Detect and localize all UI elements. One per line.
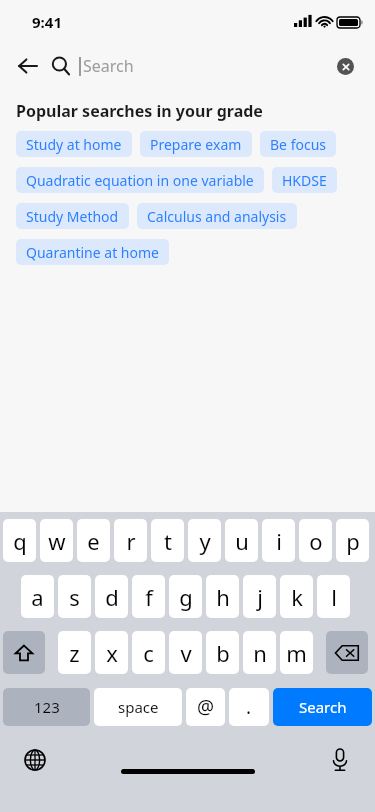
button[interactable]: t: [151, 519, 184, 562]
button[interactable]: d: [95, 575, 128, 618]
button[interactable]: g: [169, 575, 202, 618]
staticText: h: [216, 582, 230, 612]
staticText: a: [31, 582, 44, 612]
staticText: o: [309, 526, 323, 556]
staticText: Search: [299, 697, 347, 717]
button[interactable]: a: [21, 575, 54, 618]
staticText: 9:41: [32, 12, 62, 32]
staticText: Be focus: [270, 135, 326, 154]
staticText: Study Method: [26, 207, 119, 226]
button[interactable]: h: [206, 575, 239, 618]
staticText: s: [69, 582, 80, 612]
staticText: b: [216, 638, 230, 668]
button[interactable]: Change keyboard language: [20, 745, 50, 775]
staticText: v: [180, 638, 192, 668]
button[interactable]: k: [280, 575, 313, 618]
staticText: w: [48, 526, 66, 556]
button[interactable]: x: [95, 631, 128, 674]
staticText: q: [13, 526, 27, 556]
staticText: Popular searches in your grade: [16, 100, 263, 122]
staticText: m: [286, 638, 307, 668]
button[interactable]: p: [336, 519, 369, 562]
button[interactable]: q: [3, 519, 36, 562]
button[interactable]: Quadratic equation in one variable: [16, 167, 264, 193]
staticText: r: [126, 526, 136, 556]
button[interactable]: v: [169, 631, 202, 674]
staticText: x: [106, 638, 118, 668]
staticText: @: [197, 694, 215, 720]
staticText: p: [346, 526, 360, 556]
staticText: u: [235, 526, 249, 556]
button[interactable]: Back: [13, 51, 43, 81]
staticText: Search: [83, 55, 134, 77]
button[interactable]: @: [186, 688, 225, 726]
staticText: Study at home: [26, 135, 122, 154]
button[interactable]: z: [58, 631, 91, 674]
staticText: .: [246, 694, 252, 720]
button[interactable]: u: [225, 519, 258, 562]
button[interactable]: Shift: [3, 631, 45, 674]
button[interactable]: .: [229, 688, 269, 726]
button[interactable]: Study at home: [16, 131, 132, 157]
button[interactable]: m: [280, 631, 313, 674]
button[interactable]: Quarantine at home: [16, 239, 169, 265]
button[interactable]: Search: [273, 688, 372, 726]
button[interactable]: 123: [3, 688, 90, 726]
staticText: j: [257, 582, 263, 612]
staticText: Quarantine at home: [26, 243, 159, 262]
button[interactable]: Voice input: [325, 745, 355, 775]
staticText: z: [69, 638, 80, 668]
button[interactable]: space: [94, 688, 182, 726]
button[interactable]: Backspace: [326, 631, 368, 674]
button[interactable]: b: [206, 631, 239, 674]
button[interactable]: Be focus: [260, 131, 336, 157]
staticText: g: [179, 582, 193, 612]
staticText: n: [253, 638, 267, 668]
button[interactable]: s: [58, 575, 91, 618]
button[interactable]: Clear search: [330, 51, 360, 81]
staticText: d: [105, 582, 119, 612]
button[interactable]: r: [114, 519, 147, 562]
button[interactable]: i: [262, 519, 295, 562]
staticText: Calculus and analysis: [147, 207, 287, 226]
staticText: HKDSE: [282, 171, 327, 190]
staticText: Prepare exam: [150, 135, 242, 154]
staticText: k: [291, 582, 303, 612]
button[interactable]: y: [188, 519, 221, 562]
staticText: Quadratic equation in one variable: [26, 171, 254, 190]
staticText: t: [164, 526, 172, 556]
button[interactable]: w: [40, 519, 73, 562]
staticText: i: [276, 526, 282, 556]
staticText: l: [331, 582, 337, 612]
staticText: e: [87, 526, 100, 556]
button[interactable]: Prepare exam: [140, 131, 252, 157]
button[interactable]: e: [77, 519, 110, 562]
button[interactable]: f: [132, 575, 165, 618]
button[interactable]: l: [317, 575, 350, 618]
button[interactable]: HKDSE: [272, 167, 337, 193]
button[interactable]: Calculus and analysis: [137, 203, 297, 229]
button[interactable]: n: [243, 631, 276, 674]
staticText: f: [145, 582, 153, 612]
button[interactable]: o: [299, 519, 332, 562]
staticText: space: [118, 697, 159, 717]
button[interactable]: Search: [47, 52, 75, 80]
button[interactable]: c: [132, 631, 165, 674]
staticText: y: [199, 526, 211, 556]
button[interactable]: j: [243, 575, 276, 618]
button[interactable]: Study Method: [16, 203, 129, 229]
staticText: c: [143, 638, 154, 668]
staticText: 123: [34, 697, 60, 717]
